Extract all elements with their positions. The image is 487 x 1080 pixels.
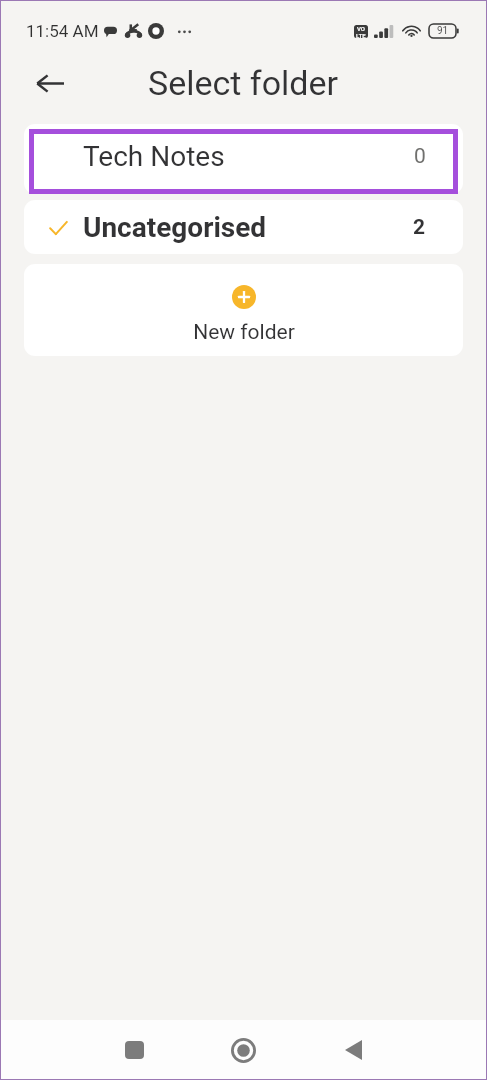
button[interactable]: Recent apps [104,1020,164,1080]
button[interactable]: New folder [24,264,463,356]
staticText: New folder [193,320,295,345]
staticText: LTE [356,32,366,38]
staticText: Select folder [148,63,339,103]
staticText: 91 [437,25,449,37]
button[interactable]: Back [323,1020,383,1080]
staticText: 0 [414,144,426,169]
staticText: Uncategorised [83,211,413,244]
staticText: 2 [413,215,426,240]
staticText: 11:54 AM [26,21,99,41]
button[interactable]: Back [24,57,76,109]
staticText: Tech Notes [83,140,414,173]
button[interactable]: Home [213,1020,273,1080]
button[interactable]: Tech Notes [24,124,463,194]
button[interactable]: Uncategorised [24,200,463,254]
staticText: VO [357,25,365,32]
